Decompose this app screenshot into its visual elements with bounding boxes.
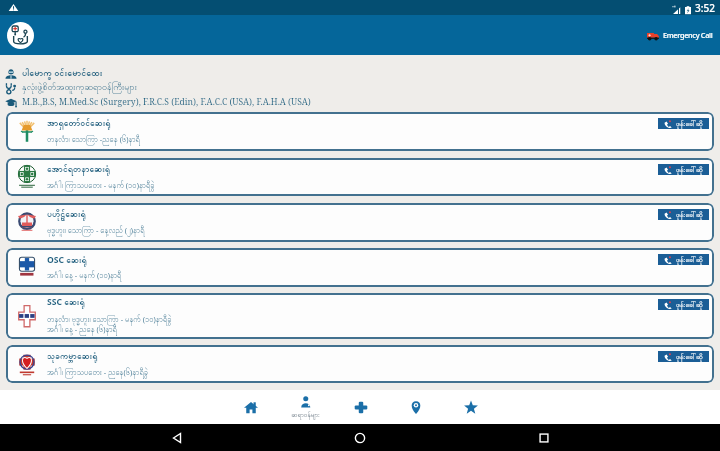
staticText: အင်္ဂါ၊ ကြာသပတေး - ညနေ(၆)နာရီခွဲ [47, 367, 149, 379]
staticText: အင်္ဂါ၊ နေ့ - မနက် (၁၀)နာရီ [47, 270, 122, 282]
staticText: ပါမောက္ခ ဝင်းမောင်ထေး [22, 66, 103, 80]
button[interactable]: OSC ဆေးရုံ [6, 248, 714, 287]
button[interactable]: အာရှတော်ဝင်ဆေးရုံ [6, 112, 714, 151]
button[interactable]: ဖုန်းခေါ်ဆို [658, 299, 709, 310]
button[interactable]: Emergency Call [647, 30, 713, 40]
button[interactable]: ပဟိုဠ်ဆေးရုံ [6, 203, 714, 242]
staticText: အောင်ရတနာဆေးရုံ [47, 164, 111, 177]
button[interactable]: ဖုန်းခေါ်ဆို [658, 164, 709, 175]
button[interactable]: ဖုန်းခေါ်ဆို [658, 209, 709, 220]
staticText: ဗုဒ္ဓဟူး၊ သောကြာ - နေ့လည် (၂)နာရီ [47, 225, 145, 237]
staticText: တနင်္လာ၊ ဗုဒ္ဓဟူး၊ သောကြာ - မနက် (၁၀)နာရ… [47, 314, 172, 335]
button[interactable]: Home [223, 390, 278, 424]
other: Back [170, 431, 184, 445]
button[interactable]: ဖုန်းခေါ်ဆို [658, 118, 709, 129]
button[interactable]: App logo [7, 22, 34, 49]
button[interactable]: သုခကမ္ဘာဆေးရုံ [6, 345, 714, 383]
staticText: ပဟိုဠ်ဆေးရုံ [47, 209, 86, 222]
staticText: ဖုန်းခေါ်ဆို [676, 352, 703, 362]
other: Home [353, 431, 367, 445]
other: Recents [537, 431, 551, 445]
button[interactable]: အောင်ရတနာဆေးရုံ [6, 158, 714, 196]
staticText: သုခကမ္ဘာဆေးရုံ [47, 351, 98, 364]
staticText: ဖုန်းခေါ်ဆို [676, 119, 703, 129]
button[interactable]: Favorites [443, 390, 498, 424]
button[interactable]: Location [388, 390, 443, 424]
button[interactable]: SSC ဆေးရုံ [6, 293, 714, 339]
button[interactable]: Doctors [278, 390, 333, 424]
staticText: ဖုန်းခေါ်ဆို [676, 210, 703, 220]
button[interactable]: Add [333, 390, 388, 424]
staticText: OSC ဆေးရုံ [47, 254, 87, 267]
staticText: နှလုံးဖွဲ့စိတ်အထူးကုဆရာဝန်ကြီးများ [22, 81, 137, 94]
button[interactable]: ဖုန်းခေါ်ဆို [658, 254, 709, 265]
staticText: M.B.,B.S, M.Med.Sc (Surgery), F.R.C.S (E… [22, 96, 311, 108]
staticText: SSC ဆေးရုံ [47, 296, 85, 309]
staticText: ဖုန်းခေါ်ဆို [676, 255, 703, 265]
staticText: 3:52 [695, 1, 715, 15]
staticText: တနင်္လာ၊ သောကြာ -ညနေ (၆)နာရီ [47, 134, 140, 146]
staticText: ဖုန်းခေါ်ဆို [676, 300, 703, 310]
staticText: ဆရာဝန်များ [291, 411, 320, 420]
staticText: အင်္ဂါ၊ ကြာသပတေး - မနက် (၁၀)နာရီခွဲ [47, 180, 155, 192]
button[interactable]: ဖုန်းခေါ်ဆို [658, 351, 709, 362]
staticText: အာရှတော်ဝင်ဆေးရုံ [47, 118, 111, 131]
staticText: ဖုန်းခေါ်ဆို [676, 165, 703, 175]
staticText: Emergency Call [663, 30, 713, 40]
